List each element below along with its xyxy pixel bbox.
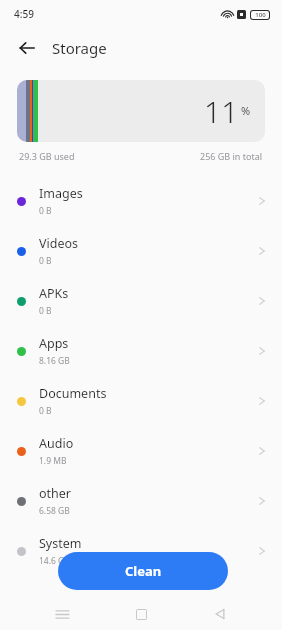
staticText: Documents: [39, 385, 107, 402]
staticText: 0 B: [39, 405, 52, 417]
staticText: 6.58 GB: [39, 505, 70, 517]
staticText: Images: [39, 185, 83, 202]
button[interactable]: Recents: [45, 598, 79, 630]
staticText: 0 B: [39, 255, 52, 267]
staticText: 14.6 GB: [39, 555, 70, 567]
button[interactable]: Clean: [58, 552, 228, 590]
staticText: 11: [204, 91, 239, 132]
staticText: 8.16 GB: [39, 355, 70, 367]
button[interactable]: Back: [14, 35, 40, 61]
staticText: 0 B: [39, 205, 52, 217]
staticText: 1.9 MB: [39, 455, 67, 467]
button[interactable]: Audio: [0, 426, 282, 476]
button[interactable]: other: [0, 476, 282, 526]
button[interactable]: Apps: [0, 326, 282, 376]
staticText: 4:59: [14, 7, 34, 21]
staticText: System: [39, 535, 82, 552]
button[interactable]: Documents: [0, 376, 282, 426]
staticText: Clean: [125, 562, 162, 580]
button[interactable]: APKs: [0, 276, 282, 326]
button[interactable]: System: [0, 526, 282, 576]
button[interactable]: Videos: [0, 226, 282, 276]
staticText: %: [241, 103, 251, 118]
staticText: 0 B: [39, 305, 52, 317]
button[interactable]: Home: [124, 598, 158, 630]
staticText: Storage: [52, 38, 107, 58]
staticText: 100: [255, 11, 266, 19]
staticText: Apps: [39, 335, 69, 352]
staticText: APKs: [39, 285, 69, 302]
button[interactable]: Images: [0, 176, 282, 226]
staticText: Videos: [39, 235, 79, 252]
staticText: other: [39, 485, 72, 502]
staticText: Audio: [39, 435, 74, 452]
staticText: 256 GB in total: [200, 150, 263, 162]
button[interactable]: Back: [203, 598, 237, 630]
staticText: 29.3 GB used: [19, 150, 75, 162]
